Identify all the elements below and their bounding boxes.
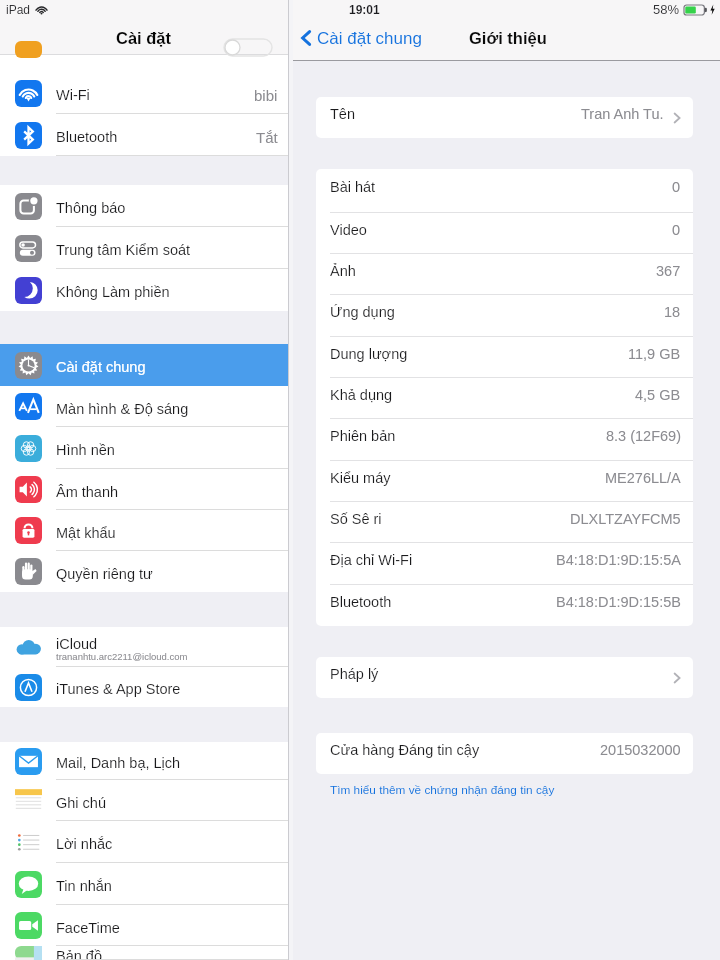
staticText: trananhtu.arc2211@icloud.com <box>56 651 188 662</box>
staticText: 18 <box>664 304 681 320</box>
button[interactable]: Mail, Danh bạ, Lịch <box>0 742 288 780</box>
staticText: 4,5 GB <box>635 387 681 403</box>
button[interactable]: Khả dụng <box>316 378 693 419</box>
staticText: 0 <box>672 222 681 238</box>
staticText: Phiên bản <box>330 428 396 444</box>
staticText: Âm thanh <box>56 484 119 500</box>
staticText: Địa chỉ Wi-Fi <box>330 552 413 568</box>
button[interactable]: iCloud <box>0 627 288 667</box>
staticText: Không Làm phiền <box>56 284 170 300</box>
staticText: Mật khẩu <box>56 525 116 541</box>
staticText: Lời nhắc <box>56 836 113 852</box>
staticText: Hình nền <box>56 442 115 458</box>
other: Back <box>300 28 312 48</box>
staticText: B4:18:D1:9D:15:5B <box>556 594 681 610</box>
button[interactable]: Thông báo <box>0 185 288 227</box>
staticText: 0 <box>672 179 681 195</box>
staticText: Khả dụng <box>330 387 393 403</box>
staticText: Mail, Danh bạ, Lịch <box>56 755 181 771</box>
button[interactable]: Back <box>298 25 424 51</box>
staticText: Bluetooth <box>330 594 392 610</box>
staticText: iPad <box>6 3 31 16</box>
button[interactable]: Pháp lý <box>316 657 693 698</box>
button[interactable]: Màn hình & Độ sáng <box>0 386 288 427</box>
button[interactable]: Wi-Fi <box>0 72 288 114</box>
staticText: iCloud <box>56 636 98 652</box>
staticText: Pháp lý <box>330 666 379 682</box>
button[interactable]: Tên <box>316 97 693 138</box>
staticText: Video <box>330 222 367 238</box>
button[interactable]: Kiểu máy <box>316 461 693 502</box>
staticText: 11,9 GB <box>628 346 681 362</box>
staticText: ME276LL/A <box>605 470 681 486</box>
staticText: Bài hát <box>330 179 376 195</box>
staticText: Quyền riêng tư <box>56 566 153 582</box>
staticText: Bluetooth <box>56 129 118 145</box>
staticText: Wi-Fi <box>56 87 90 103</box>
staticText: iTunes & App Store <box>56 681 181 697</box>
staticText: Tin nhắn <box>56 878 112 894</box>
button[interactable]: FaceTime <box>0 905 288 946</box>
staticText: Giới thiệu <box>469 29 547 47</box>
button[interactable]: Cài đặt chung <box>0 344 288 386</box>
staticText: bibi <box>254 87 278 104</box>
button[interactable]: Quyền riêng tư <box>0 551 288 592</box>
staticText: 367 <box>656 263 681 279</box>
button[interactable]: Bluetooth <box>316 585 693 626</box>
staticText: Cài đặt chung <box>317 29 422 48</box>
staticText: Tên <box>330 106 355 122</box>
staticText: Ảnh <box>330 263 356 279</box>
staticText: FaceTime <box>56 920 120 936</box>
button[interactable]: Lời nhắc <box>0 821 288 863</box>
staticText: Ghi chú <box>56 795 106 811</box>
button[interactable]: Ảnh <box>316 254 693 295</box>
button[interactable]: Tin nhắn <box>0 863 288 905</box>
staticText: Cài đặt <box>116 29 172 47</box>
staticText: DLXLTZAYFCM5 <box>570 511 681 527</box>
staticText: Ứng dụng <box>330 304 395 320</box>
staticText: 2015032000 <box>600 742 681 758</box>
button[interactable]: Bluetooth <box>0 114 288 156</box>
button[interactable]: iTunes & App Store <box>0 667 288 707</box>
staticText: 8.3 (12F69) <box>606 428 681 444</box>
staticText: Trung tâm Kiểm soát <box>56 242 191 258</box>
staticText: Cài đặt chung <box>56 359 146 375</box>
staticText: Dung lượng <box>330 346 408 362</box>
staticText: 19:01 <box>349 3 380 16</box>
button[interactable]: Tìm hiểu thêm về chứng nhận đáng tin cậy <box>330 783 555 796</box>
staticText: Tắt <box>256 129 278 146</box>
button[interactable]: Bản đồ <box>0 946 288 960</box>
button[interactable]: Trung tâm Kiểm soát <box>0 227 288 269</box>
staticText: 58% <box>653 2 680 17</box>
staticText: Thông báo <box>56 200 126 216</box>
button[interactable]: Bài hát <box>316 169 693 213</box>
button[interactable]: Phiên bản <box>316 419 693 461</box>
staticText: Kiểu máy <box>330 470 391 486</box>
staticText: Bản đồ <box>56 948 102 960</box>
staticText: Số Sê ri <box>330 511 382 527</box>
staticText: Tran Anh Tu. <box>581 106 664 122</box>
button[interactable]: Không Làm phiền <box>0 269 288 311</box>
staticText: B4:18:D1:9D:15:5A <box>556 552 681 568</box>
button[interactable]: Ghi chú <box>0 780 288 821</box>
button[interactable]: Dung lượng <box>316 337 693 378</box>
staticText: Cửa hàng Đáng tin cậy <box>330 742 480 758</box>
button[interactable]: Địa chỉ Wi-Fi <box>316 543 693 585</box>
staticText: Màn hình & Độ sáng <box>56 401 189 417</box>
button[interactable]: Số Sê ri <box>316 502 693 543</box>
button[interactable]: Hình nền <box>0 427 288 469</box>
button[interactable]: Cửa hàng Đáng tin cậy <box>316 733 693 774</box>
button[interactable]: Mật khẩu <box>0 510 288 551</box>
button[interactable]: Ứng dụng <box>316 295 693 337</box>
button[interactable]: Video <box>316 213 693 254</box>
button[interactable]: Âm thanh <box>0 469 288 510</box>
